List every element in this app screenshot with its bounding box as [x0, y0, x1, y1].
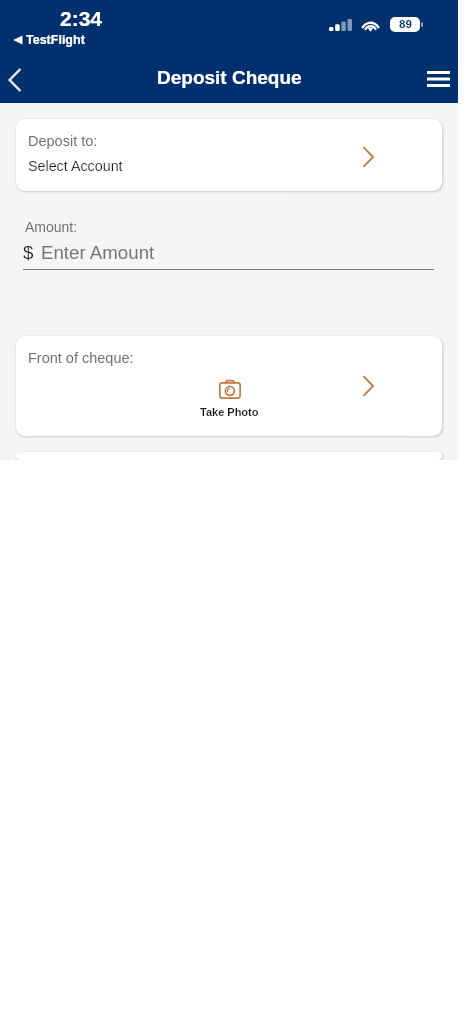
staticText: Select Account: [28, 158, 123, 174]
staticText: Deposit Cheque: [157, 67, 302, 88]
staticText: Deposit to:: [28, 133, 98, 149]
button[interactable]: Back: [0, 58, 33, 102]
staticText: Amount:: [25, 219, 78, 235]
button[interactable]: Deposit to:: [16, 119, 442, 191]
staticText: Front of cheque:: [28, 350, 134, 366]
staticText: $: [23, 242, 34, 263]
staticText: 89: [399, 18, 412, 31]
staticText: 2:34: [60, 7, 103, 30]
staticText: Take Photo: [200, 406, 259, 418]
button[interactable]: Menu: [417, 58, 458, 100]
staticText: TestFlight: [26, 33, 85, 47]
staticText: Enter Amount: [41, 242, 155, 263]
button[interactable]: Front of cheque:: [16, 336, 442, 436]
